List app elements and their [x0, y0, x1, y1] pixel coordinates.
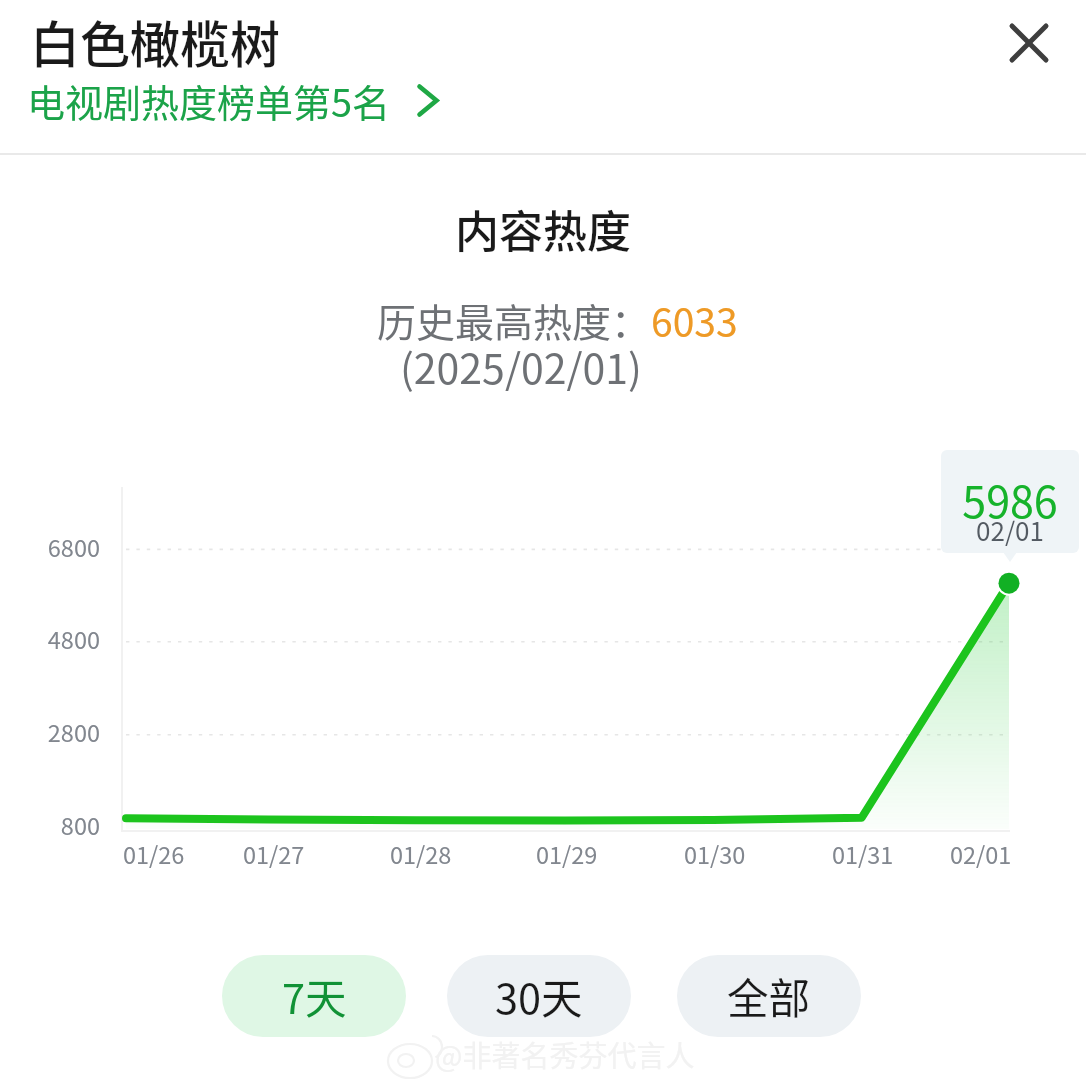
button[interactable]: 电视剧热度榜单第5名	[27, 73, 439, 128]
staticText: 6800	[0, 530, 100, 564]
staticText: 4800	[0, 622, 100, 656]
staticText: 800	[0, 808, 100, 842]
staticText: 全部	[727, 966, 811, 1026]
button[interactable]: 7天	[222, 955, 406, 1037]
staticText: 历史最高热度：	[377, 292, 651, 348]
button[interactable]: 30天	[447, 955, 631, 1037]
staticText: 5986	[941, 468, 1079, 530]
staticText: 30天	[495, 966, 583, 1026]
staticText: 白色橄榄树	[30, 5, 280, 77]
staticText: 2800	[0, 715, 100, 749]
staticText: 02/01	[950, 837, 1012, 871]
staticText: 电视剧热度榜单第5名	[27, 73, 391, 128]
button[interactable]: Close	[995, 9, 1063, 77]
staticText: 内容热度	[0, 197, 1086, 261]
staticText: 01/27	[243, 837, 305, 871]
staticText: 7天	[282, 966, 347, 1026]
staticText: 6033	[651, 292, 738, 348]
staticText: 01/28	[390, 837, 452, 871]
button[interactable]: 全部	[677, 955, 861, 1037]
staticText: 01/31	[832, 837, 894, 871]
staticText: @非著名秀芬代言人	[435, 1033, 695, 1075]
staticText: 01/30	[684, 837, 746, 871]
staticText: 02/01	[941, 511, 1079, 549]
staticText: 01/26	[123, 837, 185, 871]
staticText: (2025/02/01)	[400, 336, 642, 395]
staticText: 01/29	[536, 837, 598, 871]
